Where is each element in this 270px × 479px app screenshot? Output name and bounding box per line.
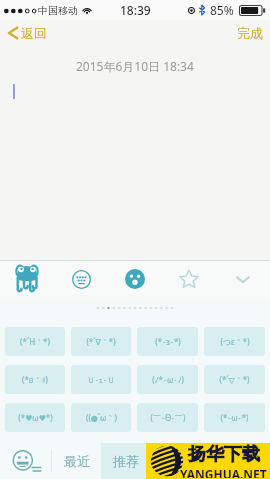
staticText: Ｕ･ｪ･Ｕ [87, 375, 115, 385]
button[interactable]: (￣･Θ･￣) [137, 403, 198, 432]
button[interactable]: (*ʚ｀♯) [5, 365, 65, 394]
button[interactable]: Emoji [108, 261, 162, 297]
button[interactable]: 最近 [52, 443, 101, 479]
button[interactable]: Kaomoji keyboard [0, 261, 54, 297]
staticText: (*･ω･*) [220, 412, 249, 423]
button[interactable]: 返回 [0, 20, 53, 46]
button[interactable]: Hide keyboard [216, 261, 270, 297]
button[interactable]: (*´H｀*) [5, 327, 65, 356]
staticText: (*♥ω♥*) [18, 412, 53, 423]
staticText: (*´∇｀*) [86, 336, 116, 347]
button[interactable]: (*･ω･*) [204, 403, 265, 432]
staticText: (*´▽｀*) [219, 374, 250, 385]
staticText: (*´H｀*) [20, 336, 50, 347]
staticText: YANGHUA.NET [180, 466, 267, 478]
staticText: 最近 [64, 453, 90, 469]
button[interactable]: (*´▽｀*) [204, 365, 265, 394]
staticText: (*ʚ｀♯) [22, 374, 48, 385]
staticText: (ﾉ*･ω･ﾉ) [152, 374, 184, 385]
button[interactable]: 完成 [229, 20, 270, 46]
button[interactable]: (つε｀*) [204, 327, 265, 356]
button[interactable]: ((●´ω｀) [71, 403, 131, 432]
button[interactable]: Favorites [162, 261, 216, 297]
staticText: (￣･Θ･￣) [150, 412, 186, 423]
button[interactable]: Emoji keyboard [0, 443, 51, 479]
staticText: 扬华下载 [188, 443, 260, 466]
button[interactable]: (*･з･*) [137, 327, 198, 356]
staticText: 返回 [21, 25, 47, 41]
staticText: (*･з･*) [155, 336, 181, 347]
staticText: ((●´ω｀) [86, 412, 117, 423]
staticText: 2015年6月10日 18:34 [76, 58, 194, 74]
button[interactable]: Symbol keyboard [54, 261, 108, 297]
button[interactable]: (*♥ω♥*) [5, 403, 65, 432]
button[interactable]: Ｕ･ｪ･Ｕ [71, 365, 131, 394]
staticText: 推荐 [113, 453, 139, 469]
button[interactable]: (ﾉ*･ω･ﾉ) [137, 365, 198, 394]
button[interactable]: (*´∇｀*) [71, 327, 131, 356]
staticText: 85% [210, 2, 234, 18]
staticText: 中国移动 [38, 4, 78, 17]
staticText: 完成 [237, 25, 263, 41]
button[interactable]: 推荐 [101, 443, 150, 479]
staticText: (つε｀*) [220, 336, 250, 347]
staticText: 18:39 [120, 2, 151, 18]
